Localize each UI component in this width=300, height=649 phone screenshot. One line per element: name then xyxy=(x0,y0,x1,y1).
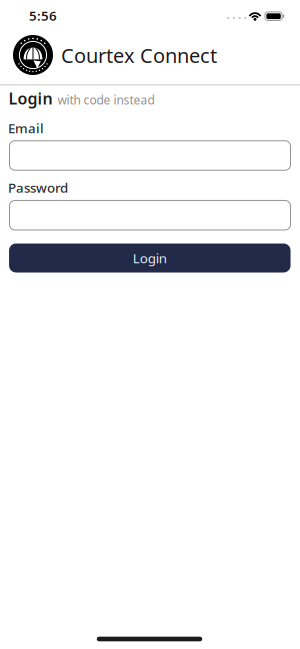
staticText: Courtex Connect xyxy=(61,42,217,69)
button[interactable]: Password xyxy=(9,200,290,230)
staticText: Login xyxy=(133,249,167,267)
staticText: Login xyxy=(8,88,52,109)
button[interactable]: with code instead xyxy=(57,92,154,108)
staticText: with code instead xyxy=(57,92,154,108)
staticText: Email xyxy=(8,119,44,137)
staticText: Password xyxy=(8,179,68,196)
staticText: 5:56 xyxy=(29,7,57,24)
button[interactable]: Login xyxy=(9,243,291,272)
button[interactable]: Email xyxy=(9,141,290,170)
